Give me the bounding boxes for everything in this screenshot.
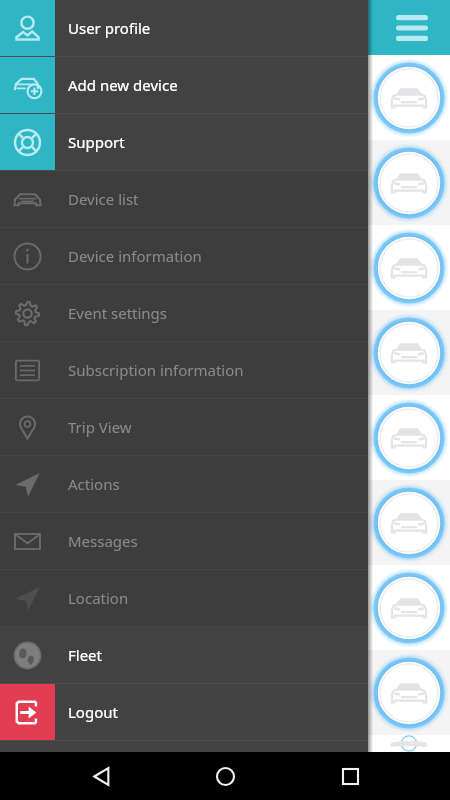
- button[interactable]: Event settings: [0, 285, 368, 341]
- staticText: Logout: [68, 702, 118, 722]
- button[interactable]: [0, 650, 450, 735]
- button[interactable]: [0, 735, 450, 752]
- button[interactable]: [0, 55, 450, 140]
- button[interactable]: Location: [0, 570, 368, 626]
- staticText: Actions: [68, 474, 120, 494]
- staticText: Device list: [68, 189, 139, 209]
- staticText: Subscription information: [68, 360, 244, 380]
- staticText: Event settings: [68, 303, 168, 323]
- button[interactable]: Add new device: [0, 57, 368, 113]
- staticText: Device information: [68, 246, 202, 266]
- button[interactable]: Home: [201, 752, 249, 800]
- staticText: Add new device: [68, 75, 178, 95]
- button[interactable]: Logout: [0, 684, 368, 740]
- staticText: Support: [68, 132, 125, 152]
- staticText: Messages: [68, 531, 138, 551]
- button[interactable]: Device list: [0, 171, 368, 227]
- staticText: Trip View: [68, 417, 132, 437]
- staticText: Location: [68, 588, 129, 608]
- button[interactable]: Fleet: [0, 627, 368, 683]
- button[interactable]: Recent apps: [326, 752, 374, 800]
- button[interactable]: [0, 225, 450, 310]
- button[interactable]: Support: [0, 114, 368, 170]
- staticText: User profile: [68, 18, 151, 38]
- button[interactable]: [0, 565, 450, 650]
- button[interactable]: [0, 310, 450, 395]
- button[interactable]: [0, 140, 450, 225]
- button[interactable]: Actions: [0, 456, 368, 512]
- button[interactable]: User profile: [0, 0, 368, 56]
- staticText: Fleet: [68, 645, 102, 665]
- button[interactable]: Subscription information: [0, 342, 368, 398]
- button[interactable]: Open menu: [384, 0, 440, 55]
- button[interactable]: [0, 480, 450, 565]
- button[interactable]: Trip View: [0, 399, 368, 455]
- button[interactable]: Messages: [0, 513, 368, 569]
- button[interactable]: [0, 395, 450, 480]
- button[interactable]: Back: [77, 752, 125, 800]
- button[interactable]: Device information: [0, 228, 368, 284]
